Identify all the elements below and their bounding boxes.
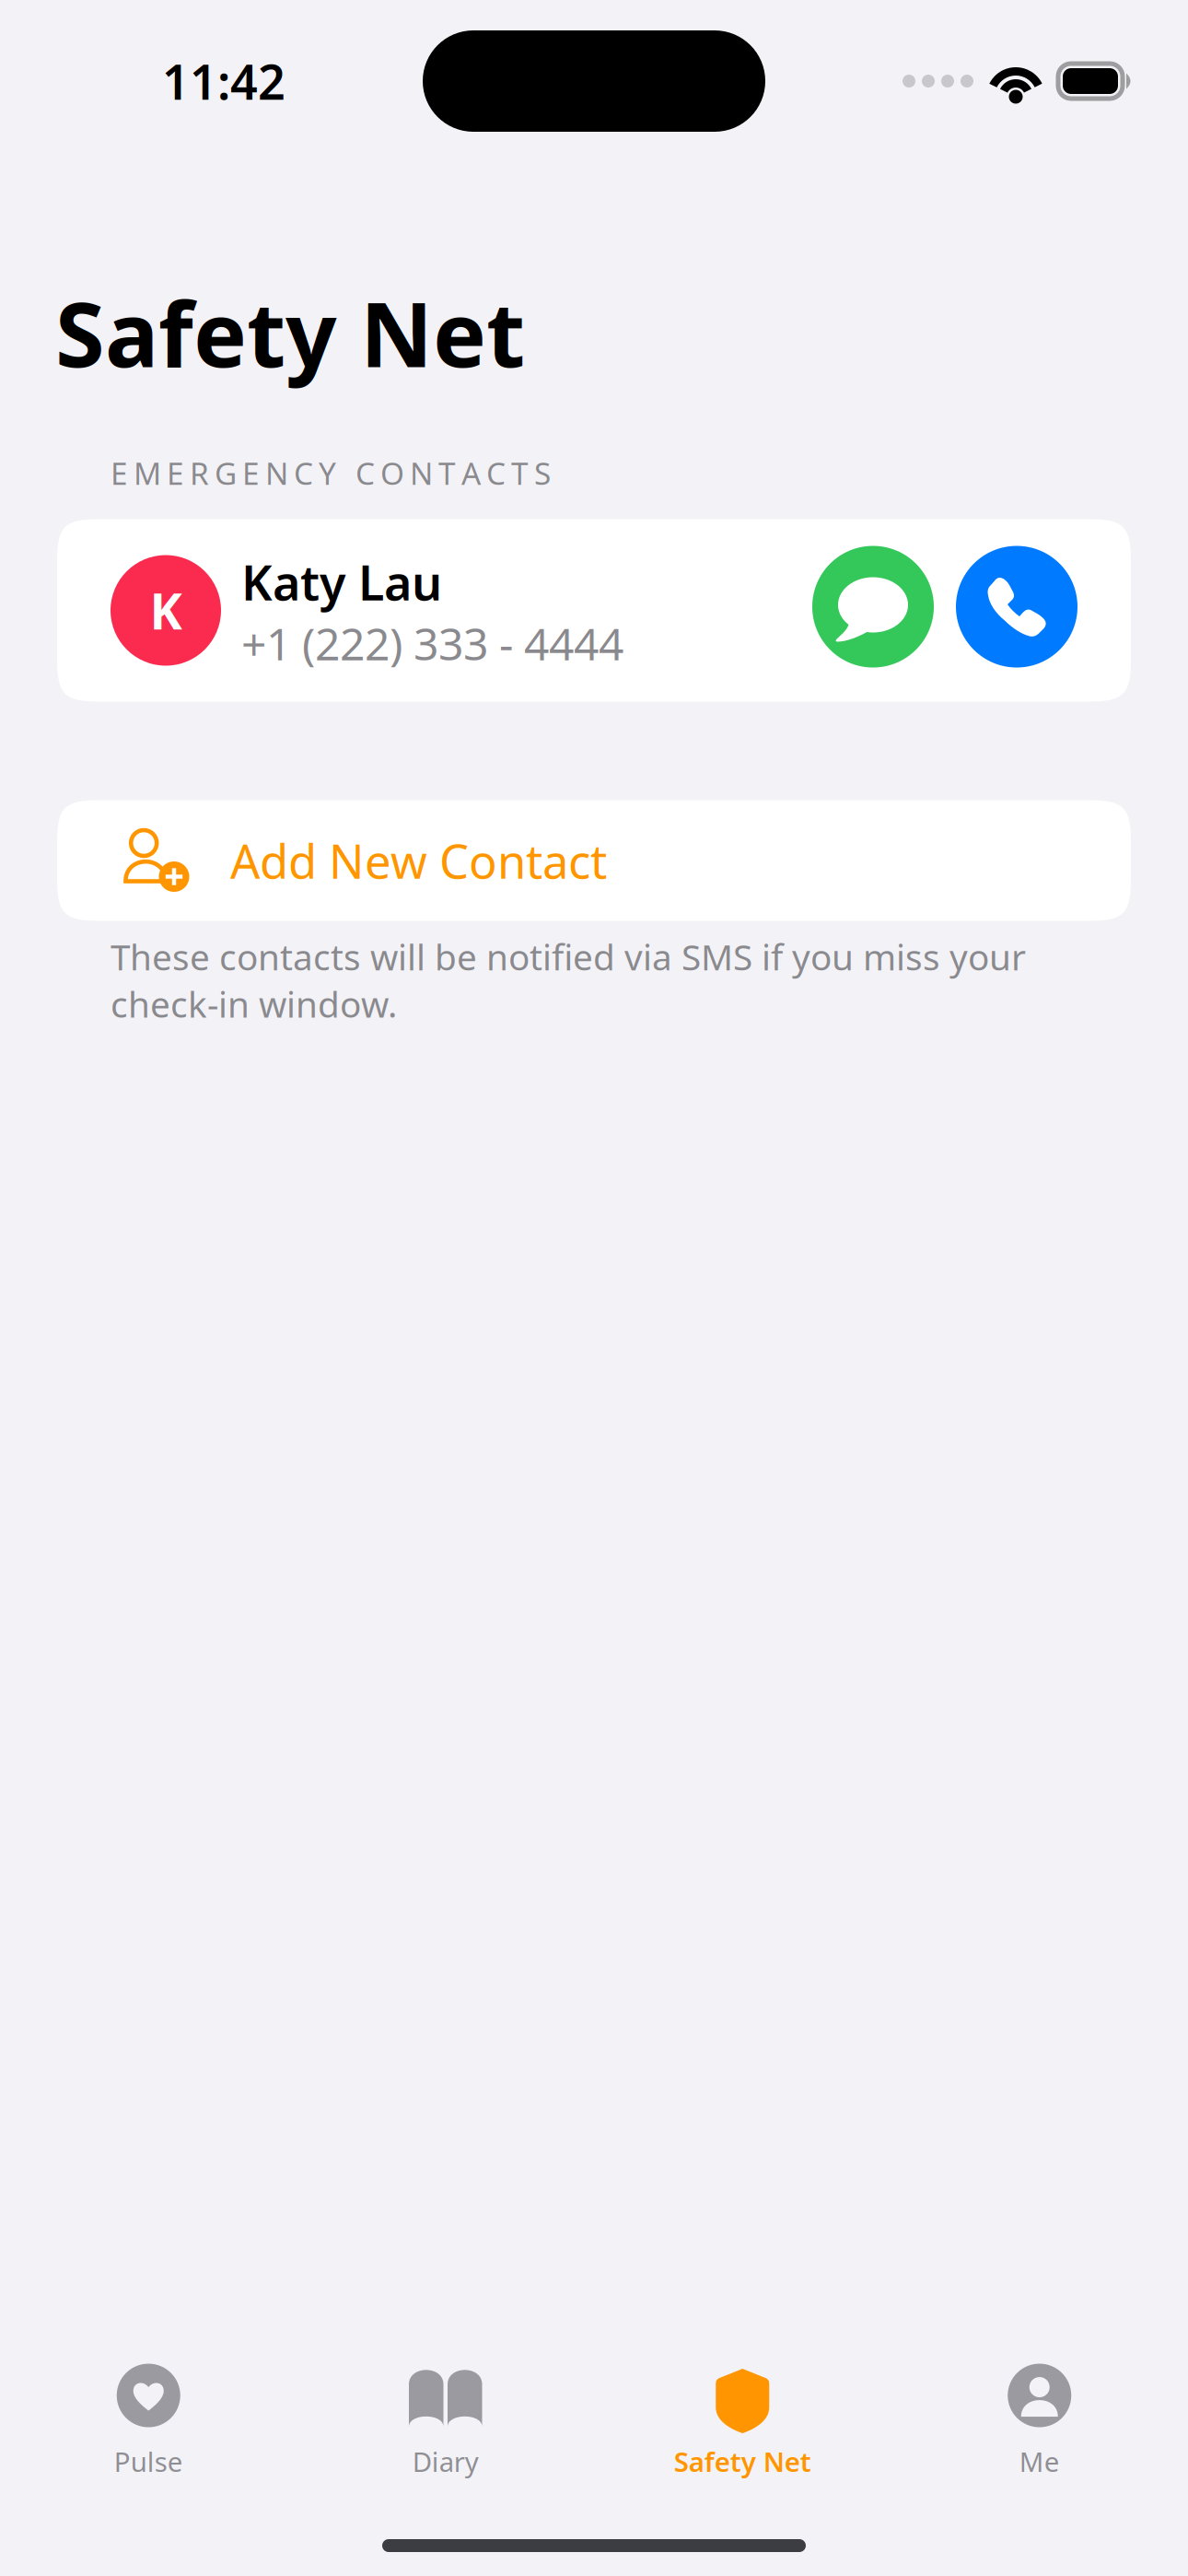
staticText: Pulse	[114, 2443, 183, 2479]
staticText: Me	[1019, 2443, 1060, 2479]
staticText: Add New Contact	[230, 830, 607, 892]
button[interactable]: Me	[891, 2363, 1188, 2479]
staticText: Diary	[412, 2443, 479, 2479]
button[interactable]: Safety Net	[594, 2363, 891, 2479]
button[interactable]: Call Katy Lau	[956, 546, 1077, 667]
staticText: Katy Lau	[241, 550, 442, 614]
button[interactable]: Message Katy Lau	[812, 546, 934, 667]
staticText: +1 (222) 333 - 4444	[241, 614, 623, 672]
staticText: K	[150, 578, 182, 643]
button[interactable]: Add New Contact	[57, 800, 1131, 921]
staticText: 11:42	[162, 49, 285, 113]
staticText: These contacts will be notified via SMS …	[111, 933, 1026, 1027]
staticText: E M E R G E N C Y C O N T A C T S	[111, 453, 551, 493]
button[interactable]: Pulse	[0, 2363, 297, 2479]
staticText: Safety Net	[55, 273, 525, 392]
staticText: Safety Net	[674, 2443, 811, 2479]
button[interactable]: Diary	[297, 2363, 594, 2479]
